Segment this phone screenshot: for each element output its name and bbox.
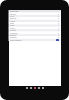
staticText: Alerts <box>10 20 16 22</box>
button[interactable]: System <box>9 36 61 38</box>
button[interactable]: Battery <box>9 34 61 36</box>
staticText: Users <box>10 27 16 29</box>
button[interactable]: Settings <box>9 10 61 13</box>
staticText: About device <box>10 39 22 41</box>
staticText: Battery <box>10 34 17 36</box>
button[interactable]: Alerts <box>9 20 61 22</box>
button[interactable]: Apps <box>9 24 61 26</box>
staticText: Apps <box>10 24 15 26</box>
button[interactable]: Display <box>9 17 61 19</box>
staticText: Display <box>10 17 17 19</box>
staticText: Settings <box>10 10 19 13</box>
button[interactable]: Privacy <box>9 29 61 31</box>
button[interactable]: Users <box>9 27 61 29</box>
staticText: Sound <box>10 13 16 15</box>
button[interactable]: Location <box>9 32 61 34</box>
button[interactable]: Data <box>9 22 61 24</box>
button[interactable]: Sound <box>9 13 61 15</box>
staticText: Location <box>10 32 18 34</box>
staticText: Data <box>10 22 15 24</box>
button[interactable]: Wi-Fi <box>9 15 61 17</box>
staticText: Wi-Fi <box>10 15 15 17</box>
button[interactable]: About device <box>9 39 61 41</box>
staticText: System <box>10 36 17 38</box>
staticText: Privacy <box>10 29 17 31</box>
button[interactable]: Done <box>56 39 59 41</box>
